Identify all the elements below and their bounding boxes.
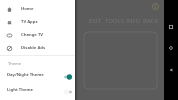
staticText: INFO <box>126 17 141 25</box>
button[interactable]: Recent apps <box>164 17 178 37</box>
staticText: TV Apps <box>21 19 38 25</box>
staticText: Change TV <box>21 32 44 38</box>
button[interactable]: EXIT <box>87 16 104 26</box>
button[interactable]: TV Apps <box>0 15 75 28</box>
button[interactable]: Day/Night Theme <box>0 69 75 81</box>
button[interactable]: Home <box>164 38 178 58</box>
staticText: Theme <box>8 61 21 66</box>
button[interactable]: Light Theme <box>0 84 75 96</box>
button[interactable]: Disable Ads <box>0 41 75 54</box>
staticText: Day/Night Theme <box>7 72 44 78</box>
staticText: Home <box>21 6 34 12</box>
button[interactable]: Back <box>164 60 178 80</box>
button[interactable]: Home <box>0 2 75 15</box>
staticText: TOOLS <box>105 17 125 25</box>
staticText: EXIT <box>89 17 102 25</box>
staticText: Light Theme <box>7 87 34 93</box>
button[interactable]: Info <box>152 3 159 10</box>
button[interactable]: INFO <box>124 16 143 26</box>
button[interactable]: TOOLS <box>103 16 127 26</box>
button[interactable]: BACK <box>141 16 161 26</box>
button[interactable]: Change TV <box>0 28 75 41</box>
staticText: Disable Ads <box>21 45 46 51</box>
staticText: BACK <box>143 17 159 25</box>
